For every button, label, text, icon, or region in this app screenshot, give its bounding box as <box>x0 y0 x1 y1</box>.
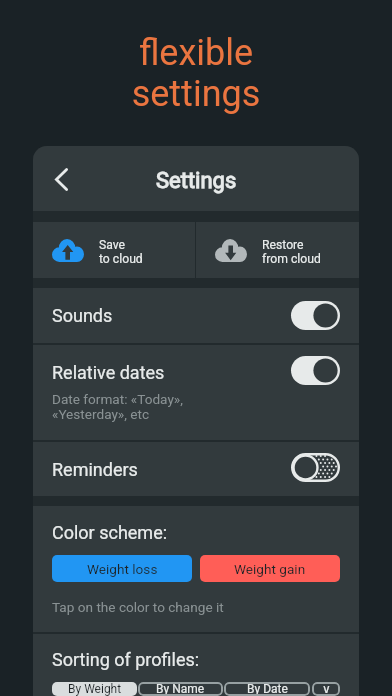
button[interactable]: Save <box>33 222 195 278</box>
staticText: Reminders <box>52 459 138 480</box>
staticText: Date format: «Today», «Yesterday», etc <box>52 391 183 423</box>
staticText: Weight gain <box>234 561 306 577</box>
button[interactable]: Sounds <box>33 288 359 343</box>
button[interactable]: ∨ <box>312 682 340 696</box>
button[interactable]: By Date <box>224 682 310 696</box>
staticText: from cloud <box>262 252 321 266</box>
staticText: Restore <box>262 238 304 252</box>
button[interactable]: Weight loss <box>52 555 192 582</box>
button[interactable]: Switch off <box>291 453 340 482</box>
button[interactable]: By Name <box>138 682 223 696</box>
staticText: Weight loss <box>87 561 158 577</box>
staticText: Settings <box>156 168 237 194</box>
button[interactable]: Weight gain <box>200 555 340 582</box>
staticText: Sounds <box>52 305 113 326</box>
staticText: ∨ <box>322 682 331 696</box>
button[interactable]: Switch on <box>291 301 340 330</box>
staticText: to cloud <box>99 252 143 266</box>
staticText: By Name <box>156 682 205 696</box>
button[interactable]: Restore <box>196 222 359 278</box>
button[interactable]: Reminders <box>33 442 359 496</box>
staticText: By Weight <box>68 682 122 696</box>
button[interactable]: By Weight <box>52 682 137 696</box>
staticText: Color scheme: <box>52 522 168 543</box>
staticText: Save <box>99 238 126 252</box>
button[interactable]: Switch on <box>291 356 340 385</box>
staticText: flexible settings <box>0 32 392 115</box>
staticText: Relative dates <box>52 362 165 383</box>
button[interactable]: Back <box>39 157 83 201</box>
staticText: By Date <box>247 682 288 696</box>
button[interactable]: Relative dates <box>33 345 359 440</box>
staticText: Sorting of profiles: <box>52 649 200 670</box>
staticText: Tap on the color to change it <box>52 599 224 615</box>
